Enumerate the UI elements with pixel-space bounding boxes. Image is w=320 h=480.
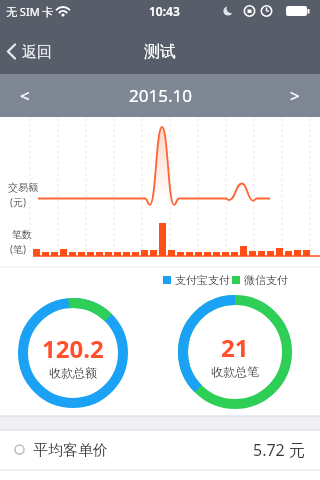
staticText: 5.72 元 (253, 439, 305, 461)
staticText: 笔数 (12, 228, 32, 241)
staticText: 支付宝支付 (175, 273, 230, 287)
staticText: 返回 (22, 43, 52, 62)
staticText: < (20, 84, 30, 107)
staticText: 21 (221, 331, 249, 364)
staticText: > (290, 84, 300, 107)
staticText: 10:43 (149, 3, 180, 19)
button[interactable]: < (0, 74, 50, 117)
staticText: (笔) (10, 242, 26, 256)
staticText: 收款总笔 (211, 364, 259, 379)
staticText: 交易额 (8, 181, 38, 194)
staticText: 无 SIM 卡 (6, 4, 54, 19)
button[interactable]: 返回 (0, 36, 60, 68)
staticText: 测试 (144, 42, 176, 62)
staticText: 120.2 (42, 332, 104, 365)
staticText: (元) (10, 195, 26, 209)
staticText: 平均客单价 (33, 441, 108, 460)
button[interactable]: > (270, 74, 320, 117)
staticText: 收款总额 (49, 365, 97, 380)
staticText: 2015.10 (129, 84, 192, 107)
button[interactable]: 平均客单价 (0, 430, 320, 470)
staticText: 微信支付 (244, 273, 288, 287)
